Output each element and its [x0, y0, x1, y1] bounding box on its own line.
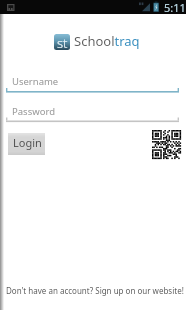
- staticText: st: [57, 34, 68, 50]
- button[interactable]: Login: [8, 133, 45, 155]
- staticText: Schooltraq: [74, 32, 140, 50]
- staticText: Login: [13, 135, 42, 150]
- button[interactable]: Scan QR code: [152, 130, 181, 159]
- staticText: Username: [12, 75, 59, 88]
- staticText: Password: [12, 105, 55, 118]
- button[interactable]: Password: [0, 99, 186, 125]
- staticText: 5:11: [164, 0, 186, 14]
- staticText: Don't have an account? Sign up on our we…: [6, 285, 184, 296]
- button[interactable]: Don't have an account? Sign up on our we…: [6, 285, 186, 296]
- button[interactable]: Username: [0, 69, 186, 95]
